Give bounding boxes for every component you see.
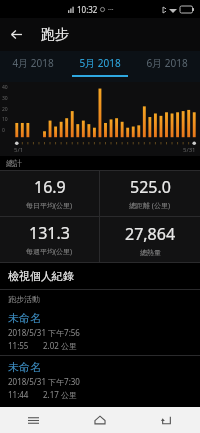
staticText: 27,864 [125, 223, 176, 245]
button[interactable]: 未命名 [0, 307, 200, 355]
button[interactable]: 16.9 [0, 171, 99, 216]
staticText: 5月 2018 [79, 56, 121, 70]
button[interactable]: Home [66, 407, 133, 433]
button[interactable]: 4月 2018 [0, 51, 66, 82]
staticText: 11:55 [8, 340, 29, 351]
staticText: 5/1 [14, 146, 24, 154]
button[interactable]: 131.3 [0, 217, 99, 262]
staticText: 10 [2, 116, 8, 123]
staticText: 6月 2018 [146, 56, 188, 70]
staticText: 30 [2, 95, 8, 102]
staticText: 跑步活動 [8, 294, 40, 304]
button[interactable]: 6月 2018 [133, 51, 200, 82]
button[interactable]: Back [133, 407, 200, 433]
staticText: 總熱量 [140, 248, 161, 257]
staticText: 2.17 公里 [43, 389, 77, 400]
staticText: 未命名 [8, 311, 41, 325]
staticText: 未命名 [8, 360, 41, 374]
staticText: 2018/5/31 下午7:56 [8, 327, 80, 338]
staticText: 525.0 [130, 176, 171, 198]
staticText: 每日平均(公里) [26, 201, 73, 211]
staticText: 2.02 公里 [43, 340, 77, 351]
staticText: 20 [2, 106, 8, 113]
button[interactable]: 未命名 [0, 356, 200, 404]
button[interactable]: 27,864 [100, 217, 200, 262]
staticText: 131.3 [29, 222, 70, 244]
button[interactable]: 5月 2018 [66, 51, 133, 82]
staticText: 2018/5/31 下午7:30 [8, 376, 80, 387]
staticText: 4月 2018 [12, 56, 54, 70]
staticText: 總距離 (公里) [129, 201, 171, 211]
button[interactable]: Recent apps [0, 407, 66, 433]
staticText: 0 [2, 127, 5, 134]
staticText: 11:44 [8, 389, 29, 400]
staticText: 5/31 [183, 146, 196, 154]
button[interactable]: 525.0 [100, 171, 200, 216]
staticText: 檢視個人紀錄 [8, 269, 74, 283]
button[interactable]: 檢視個人紀錄 [0, 263, 200, 289]
staticText: ··· [108, 5, 114, 15]
staticText: 總計 [6, 158, 22, 168]
staticText: 每週平均(公里) [26, 247, 73, 257]
button[interactable]: Back [0, 18, 33, 51]
staticText: 40 [2, 84, 8, 91]
staticText: 10:32 [77, 4, 98, 15]
staticText: 16.9 [34, 176, 66, 198]
staticText: 跑步 [41, 26, 69, 44]
